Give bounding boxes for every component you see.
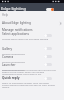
button[interactable]: Toggle bbox=[44, 77, 52, 80]
staticText: Receive notifications bbox=[2, 60, 26, 63]
button[interactable]: Select applications bbox=[0, 32, 64, 41]
button[interactable]: Toggle bbox=[44, 47, 52, 50]
staticText: Camera bbox=[2, 55, 14, 59]
button[interactable]: Quick reply bbox=[0, 76, 64, 88]
other: Open bbox=[58, 21, 62, 25]
button[interactable]: Toggle bbox=[44, 55, 52, 58]
staticText: Quick reply bbox=[2, 76, 20, 80]
button[interactable]: Gallery bbox=[0, 45, 64, 53]
staticText: About Edge lighting bbox=[2, 21, 58, 25]
staticText: Edge lighting shows a coloured light aro… bbox=[2, 68, 58, 75]
button[interactable]: Toggle bbox=[44, 34, 52, 37]
staticText: Gallery bbox=[2, 47, 13, 51]
staticText: Launcher bbox=[2, 63, 16, 67]
button[interactable]: Turn off edge lighting bbox=[46, 8, 54, 11]
button[interactable]: Launcher bbox=[0, 61, 64, 69]
staticText: Manage notifications bbox=[2, 28, 33, 32]
staticText: Receive notifications bbox=[2, 52, 26, 55]
staticText: Select applications bbox=[2, 32, 29, 36]
button[interactable]: About Edge lighting bbox=[0, 20, 64, 26]
staticText: Choose which apps can use edge lighting … bbox=[2, 37, 50, 41]
button[interactable]: Toggle bbox=[44, 63, 52, 66]
staticText: Edge lighting bbox=[1, 6, 26, 11]
staticText: Reply to messages straight from the edge… bbox=[2, 81, 56, 88]
button[interactable]: Camera bbox=[0, 53, 64, 61]
staticText: Help bbox=[2, 13, 9, 17]
staticText: Receive notifications bbox=[2, 68, 26, 71]
